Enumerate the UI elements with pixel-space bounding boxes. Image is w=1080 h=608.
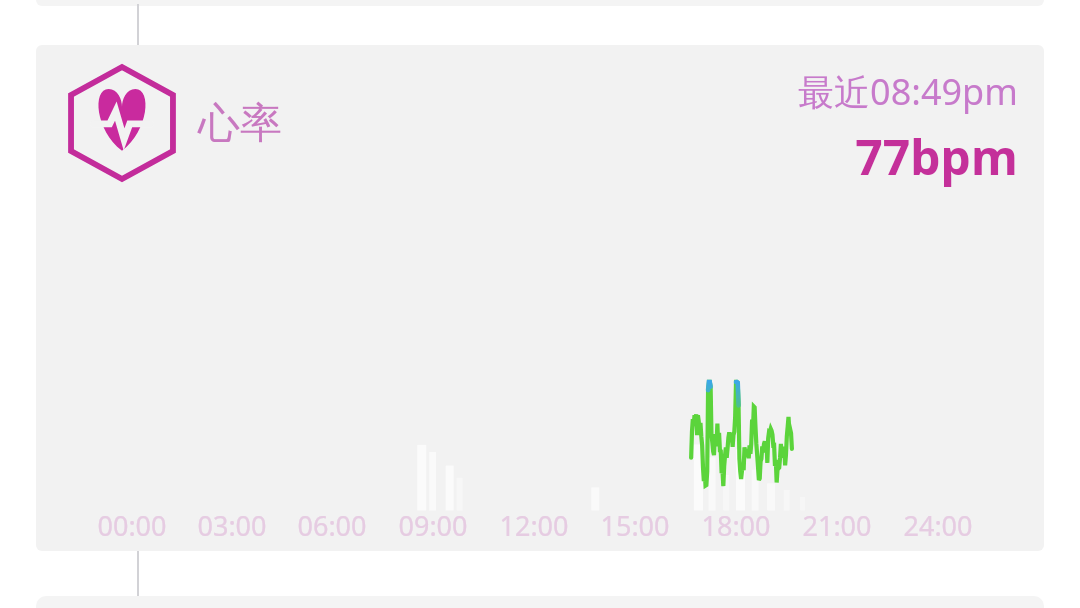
staticText: 15:00: [600, 507, 670, 544]
staticText: 12:00: [499, 507, 569, 544]
staticText: 77bpm: [855, 124, 1018, 189]
staticText: 18:00: [701, 507, 771, 544]
staticText: 03:00: [197, 507, 267, 544]
staticText: 24:00: [903, 507, 973, 544]
staticText: 09:00: [398, 507, 468, 544]
staticText: 06:00: [297, 507, 367, 544]
button[interactable]: Heart rate: [36, 45, 1044, 551]
staticText: 21:00: [802, 507, 872, 544]
staticText: 心率: [198, 97, 282, 150]
staticText: 00:00: [97, 507, 167, 544]
other: Heart rate: [66, 67, 178, 179]
staticText: 最近08:49pm: [798, 67, 1018, 116]
